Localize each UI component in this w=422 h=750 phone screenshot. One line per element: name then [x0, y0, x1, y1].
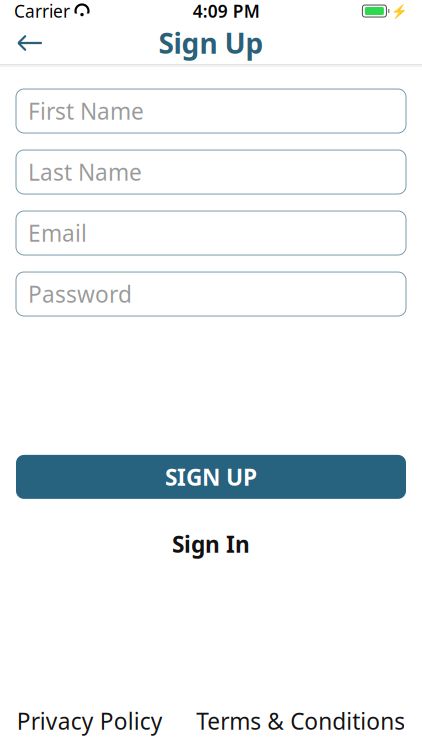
staticText: Sign In [172, 529, 250, 559]
staticText: 4:09 PM [193, 0, 260, 22]
button[interactable]: Privacy Policy [17, 706, 163, 736]
staticText: Last Name [28, 157, 142, 187]
staticText: SIGN UP [165, 462, 257, 492]
staticText: Terms & Conditions [196, 706, 405, 736]
button[interactable]: Back [12, 22, 48, 64]
button[interactable]: SIGN UP [16, 455, 406, 499]
staticText: Email [28, 218, 87, 248]
staticText: First Name [28, 96, 144, 126]
staticText: Password [28, 279, 132, 309]
staticText: ⚡ [391, 3, 408, 19]
staticText: Sign Up [158, 24, 263, 62]
button[interactable]: Sign In [0, 521, 422, 567]
button[interactable]: Terms & Conditions [196, 706, 405, 736]
staticText: Carrier [14, 0, 70, 22]
staticText: Privacy Policy [17, 706, 163, 736]
